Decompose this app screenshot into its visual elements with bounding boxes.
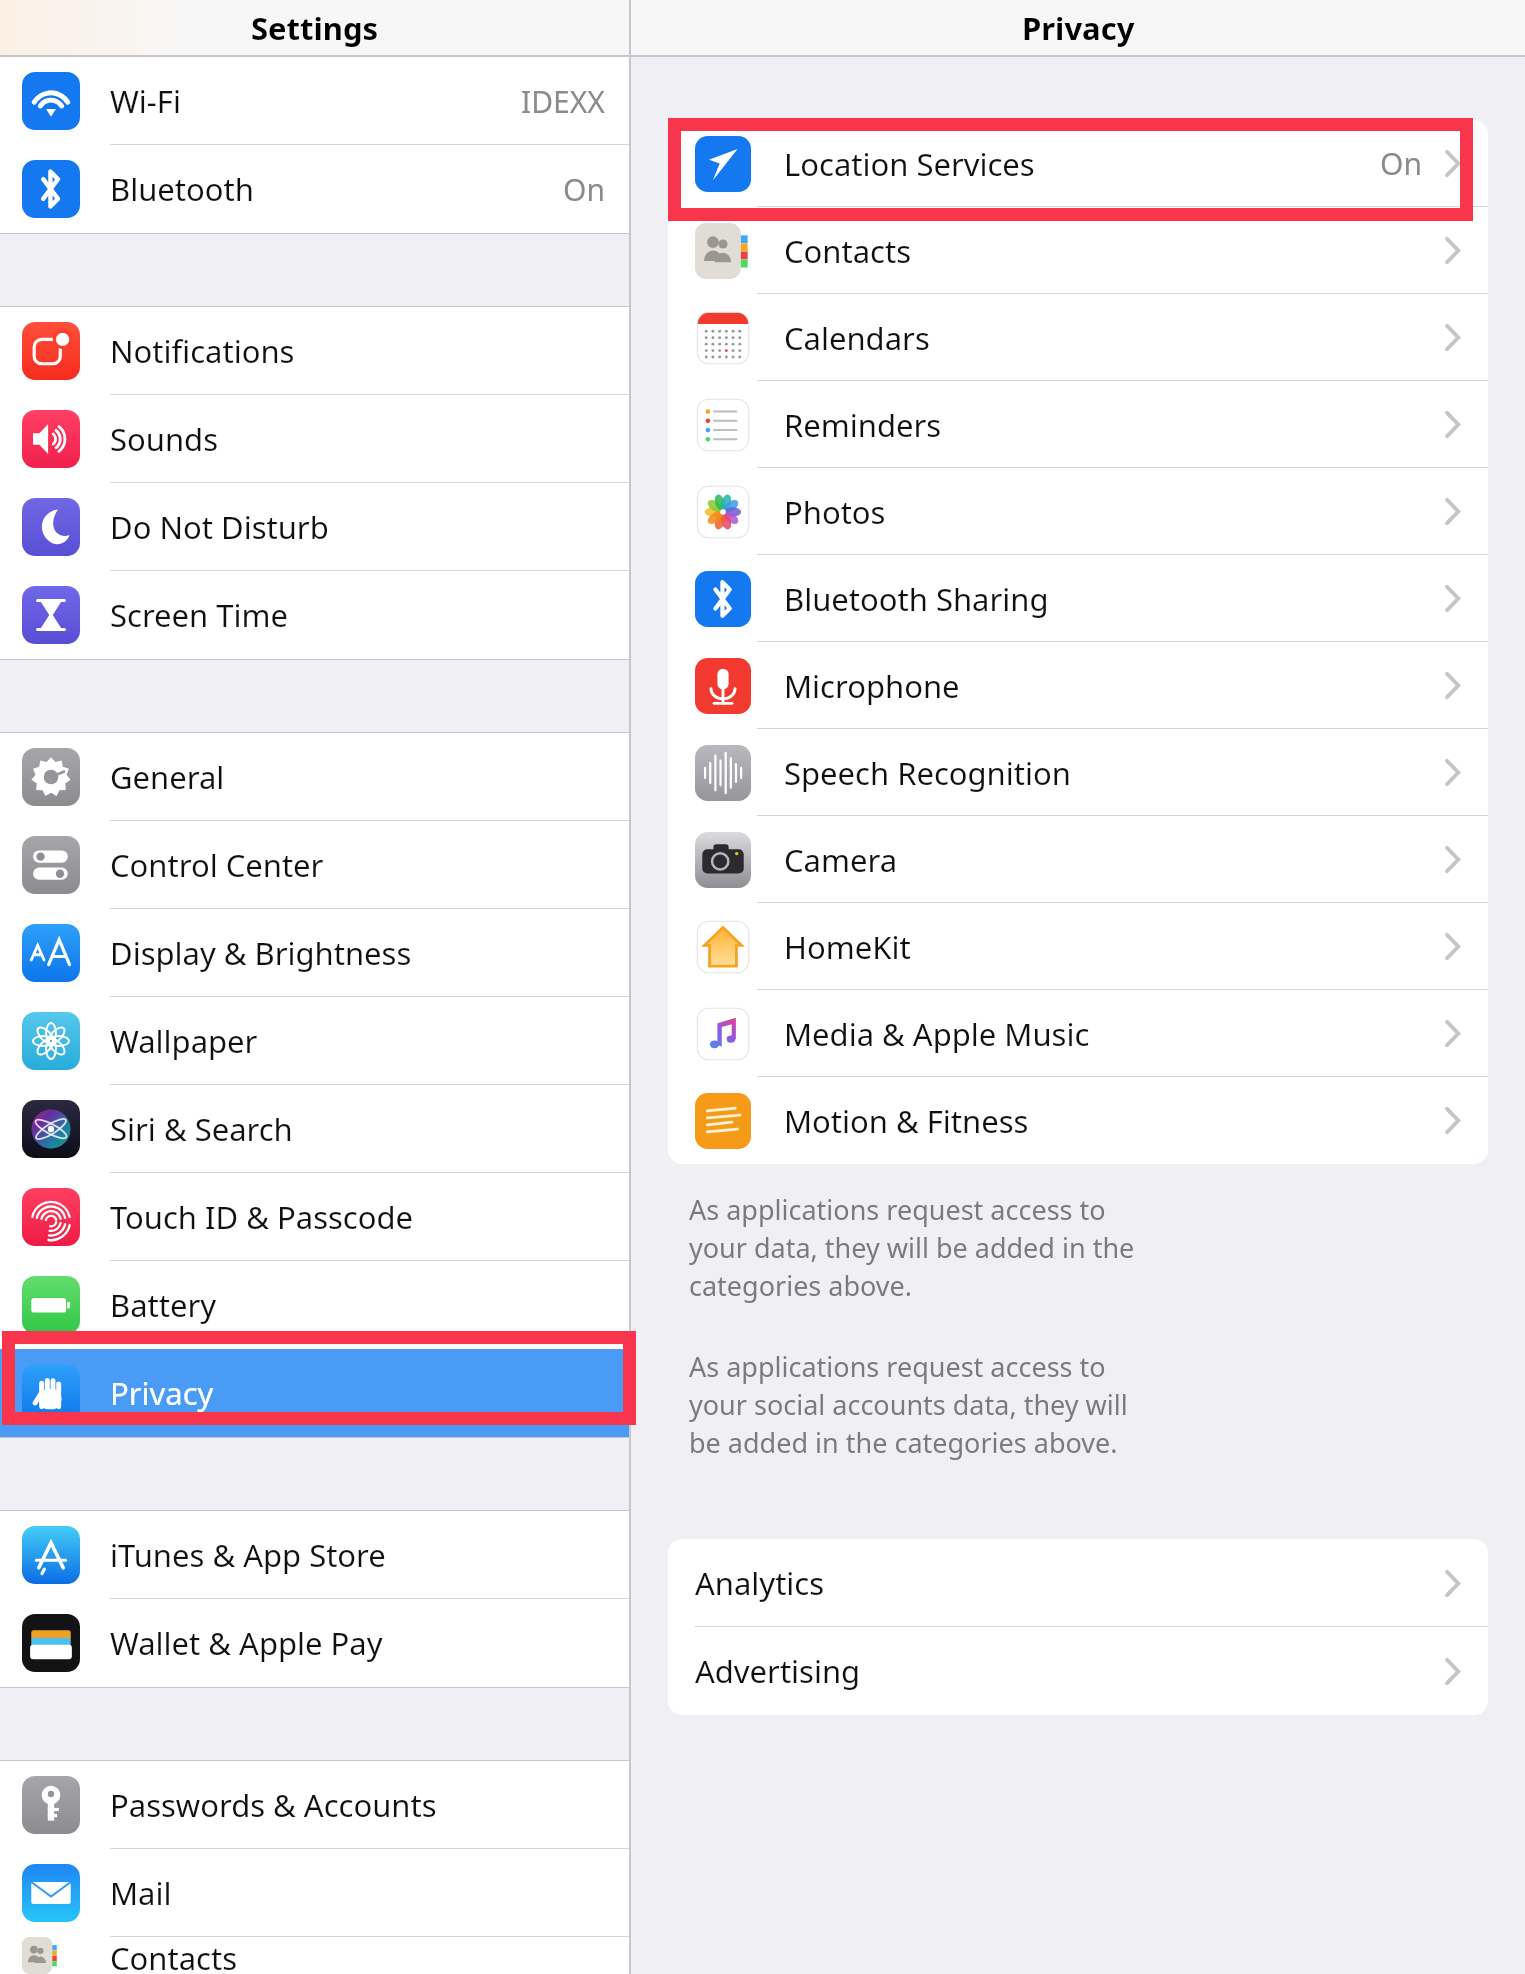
- button[interactable]: Contacts: [0, 1937, 629, 1974]
- button[interactable]: Display & Brightness: [0, 909, 629, 997]
- staticText: Wallet & Apple Pay: [110, 1622, 383, 1664]
- staticText: Camera: [784, 839, 898, 881]
- button[interactable]: Wallpaper: [0, 997, 629, 1085]
- button[interactable]: Wi-Fi: [0, 57, 629, 145]
- button[interactable]: Bluetooth: [0, 145, 629, 233]
- staticText: As applications request access to your d…: [689, 1191, 1165, 1304]
- staticText: Notifications: [110, 330, 295, 372]
- button[interactable]: Control Center: [0, 821, 629, 909]
- button[interactable]: Do Not Disturb: [0, 483, 629, 571]
- button[interactable]: Sounds: [0, 395, 629, 483]
- staticText: Contacts: [784, 230, 912, 272]
- staticText: Bluetooth: [110, 168, 254, 210]
- staticText: Analytics: [695, 1562, 825, 1604]
- staticText: On: [563, 169, 605, 210]
- staticText: iTunes & App Store: [110, 1534, 386, 1576]
- button[interactable]: General: [0, 733, 629, 821]
- staticText: Privacy: [110, 1372, 214, 1414]
- button[interactable]: Battery: [0, 1261, 629, 1349]
- staticText: As applications request access to your s…: [689, 1348, 1165, 1461]
- staticText: HomeKit: [784, 926, 911, 968]
- button[interactable]: Bluetooth Sharing: [668, 555, 1488, 642]
- staticText: Contacts: [110, 1937, 238, 1974]
- staticText: Do Not Disturb: [110, 506, 329, 548]
- button[interactable]: Notifications: [0, 307, 629, 395]
- staticText: Settings: [251, 7, 379, 49]
- staticText: Battery: [110, 1284, 217, 1326]
- button[interactable]: Analytics: [668, 1539, 1488, 1627]
- staticText: On: [1380, 143, 1422, 184]
- button[interactable]: Media & Apple Music: [668, 990, 1488, 1077]
- staticText: Privacy: [1022, 7, 1135, 49]
- button[interactable]: Motion & Fitness: [668, 1077, 1488, 1164]
- staticText: General: [110, 756, 225, 798]
- staticText: Bluetooth Sharing: [784, 578, 1049, 620]
- button[interactable]: Microphone: [668, 642, 1488, 729]
- staticText: Speech Recognition: [784, 752, 1071, 794]
- button[interactable]: Speech Recognition: [668, 729, 1488, 816]
- staticText: Media & Apple Music: [784, 1013, 1090, 1055]
- button[interactable]: Advertising: [668, 1627, 1488, 1715]
- staticText: Wi-Fi: [110, 80, 181, 122]
- button[interactable]: Contacts: [668, 207, 1488, 294]
- button[interactable]: Wallet & Apple Pay: [0, 1599, 629, 1687]
- staticText: IDEXX: [521, 81, 605, 122]
- staticText: Motion & Fitness: [784, 1100, 1029, 1142]
- staticText: Mail: [110, 1872, 172, 1914]
- button[interactable]: Mail: [0, 1849, 629, 1937]
- button[interactable]: Reminders: [668, 381, 1488, 468]
- staticText: Touch ID & Passcode: [110, 1196, 414, 1238]
- button[interactable]: Touch ID & Passcode: [0, 1173, 629, 1261]
- staticText: Reminders: [784, 404, 942, 446]
- button[interactable]: Privacy: [0, 1349, 629, 1437]
- staticText: Screen Time: [110, 594, 288, 636]
- button[interactable]: Screen Time: [0, 571, 629, 659]
- button[interactable]: Calendars: [668, 294, 1488, 381]
- button[interactable]: iTunes & App Store: [0, 1511, 629, 1599]
- staticText: Photos: [784, 491, 886, 533]
- staticText: Calendars: [784, 317, 930, 359]
- button[interactable]: Siri & Search: [0, 1085, 629, 1173]
- staticText: Location Services: [784, 143, 1035, 185]
- staticText: Sounds: [110, 418, 219, 460]
- button[interactable]: Photos: [668, 468, 1488, 555]
- staticText: Wallpaper: [110, 1020, 258, 1062]
- button[interactable]: HomeKit: [668, 903, 1488, 990]
- button[interactable]: Passwords & Accounts: [0, 1761, 629, 1849]
- staticText: Display & Brightness: [110, 932, 412, 974]
- staticText: Control Center: [110, 844, 324, 886]
- staticText: Siri & Search: [110, 1108, 293, 1150]
- staticText: Microphone: [784, 665, 960, 707]
- staticText: Advertising: [695, 1650, 861, 1692]
- button[interactable]: Camera: [668, 816, 1488, 903]
- staticText: Passwords & Accounts: [110, 1784, 437, 1826]
- button[interactable]: Location Services: [668, 120, 1488, 207]
